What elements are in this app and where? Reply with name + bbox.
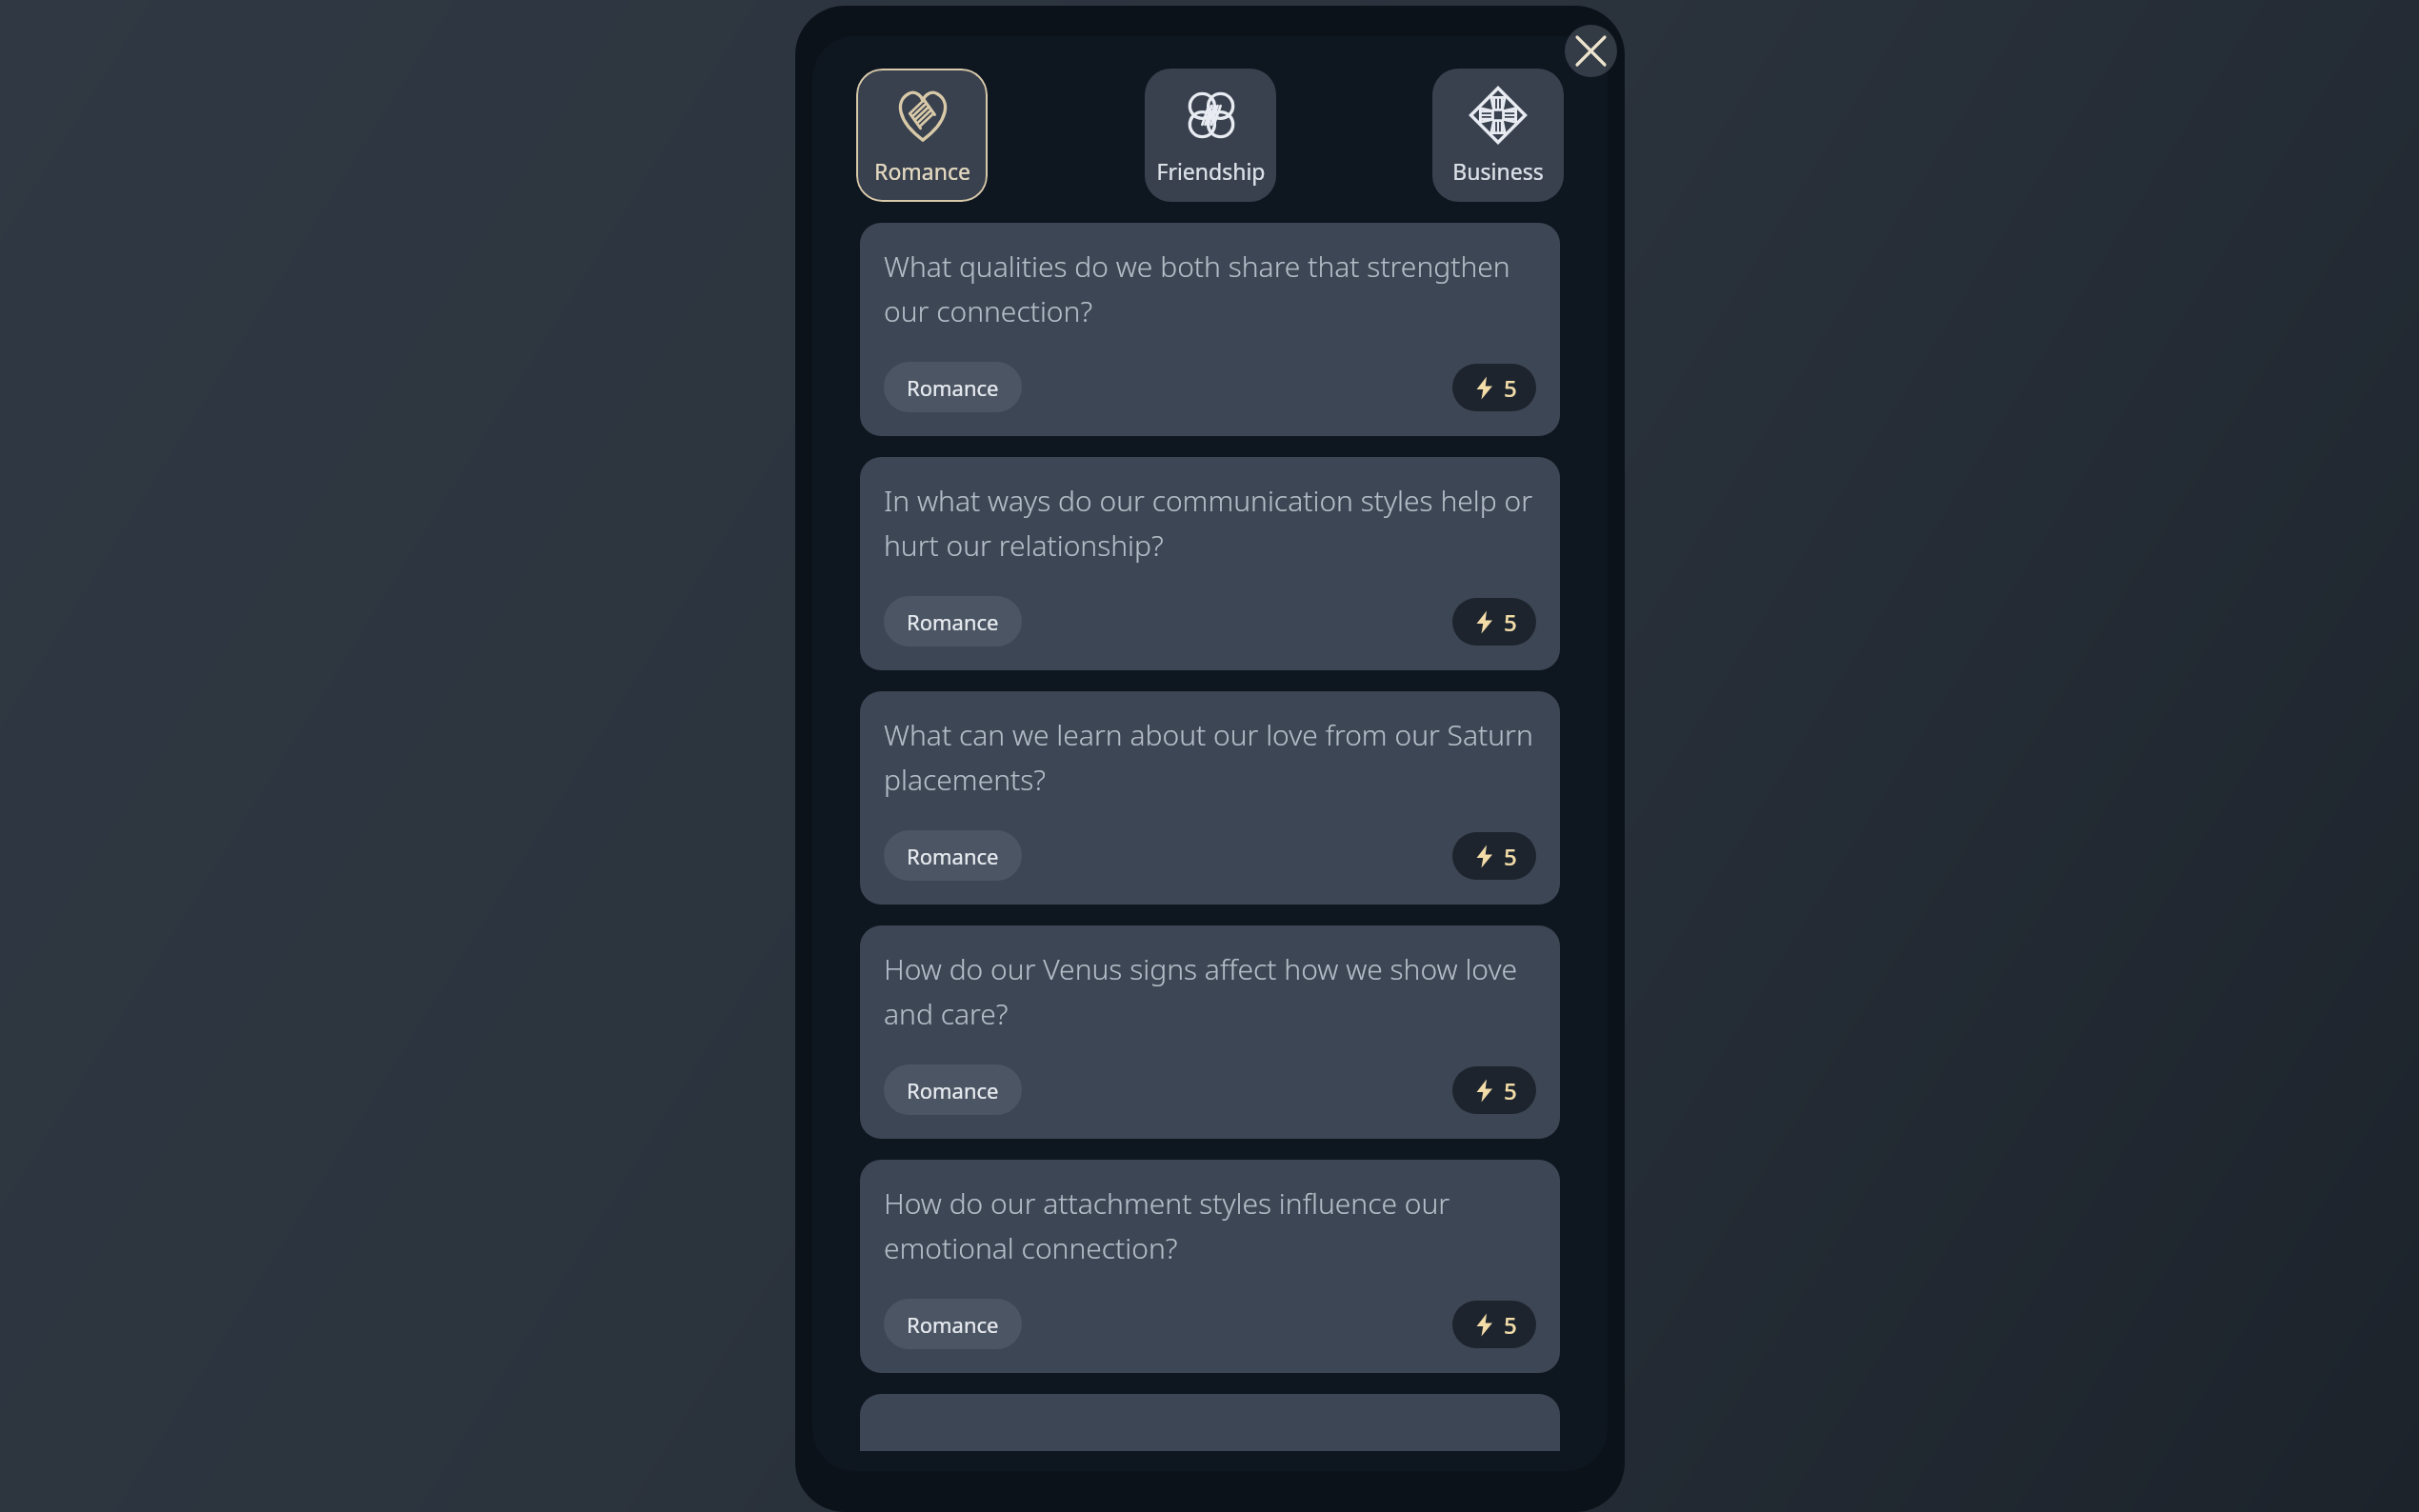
staticText: Romance	[907, 1310, 999, 1339]
staticText: Business	[1452, 156, 1544, 186]
staticText: Romance	[907, 842, 999, 870]
staticText: 5	[1504, 1075, 1517, 1106]
staticText: How do our attachment styles influence o…	[884, 1184, 1536, 1267]
staticText: Romance	[874, 156, 970, 186]
button[interactable]: Business	[1432, 69, 1564, 202]
button[interactable]: How do our attachment styles influence o…	[860, 1160, 1560, 1373]
button[interactable]	[860, 1394, 1560, 1451]
button[interactable]: How do our Venus signs affect how we sho…	[860, 925, 1560, 1139]
staticText: In what ways do our communication styles…	[884, 481, 1536, 565]
button[interactable]: What qualities do we both share that str…	[860, 223, 1560, 436]
staticText: 5	[1504, 1309, 1517, 1341]
button[interactable]: In what ways do our communication styles…	[860, 457, 1560, 670]
staticText: 5	[1504, 372, 1517, 404]
staticText: Friendship	[1156, 156, 1266, 186]
staticText: Romance	[907, 1076, 999, 1104]
staticText: How do our Venus signs affect how we sho…	[884, 949, 1536, 1033]
staticText: What can we learn about our love from ou…	[884, 715, 1536, 799]
staticText: What qualities do we both share that str…	[884, 247, 1536, 330]
button[interactable]: Friendship	[1145, 69, 1276, 202]
button[interactable]: What can we learn about our love from ou…	[860, 691, 1560, 905]
staticText: 5	[1504, 841, 1517, 872]
staticText: 5	[1504, 607, 1517, 638]
button[interactable]: Close	[1565, 25, 1617, 77]
staticText: Romance	[907, 607, 999, 636]
button[interactable]: Romance	[856, 69, 988, 202]
staticText: Romance	[907, 373, 999, 402]
